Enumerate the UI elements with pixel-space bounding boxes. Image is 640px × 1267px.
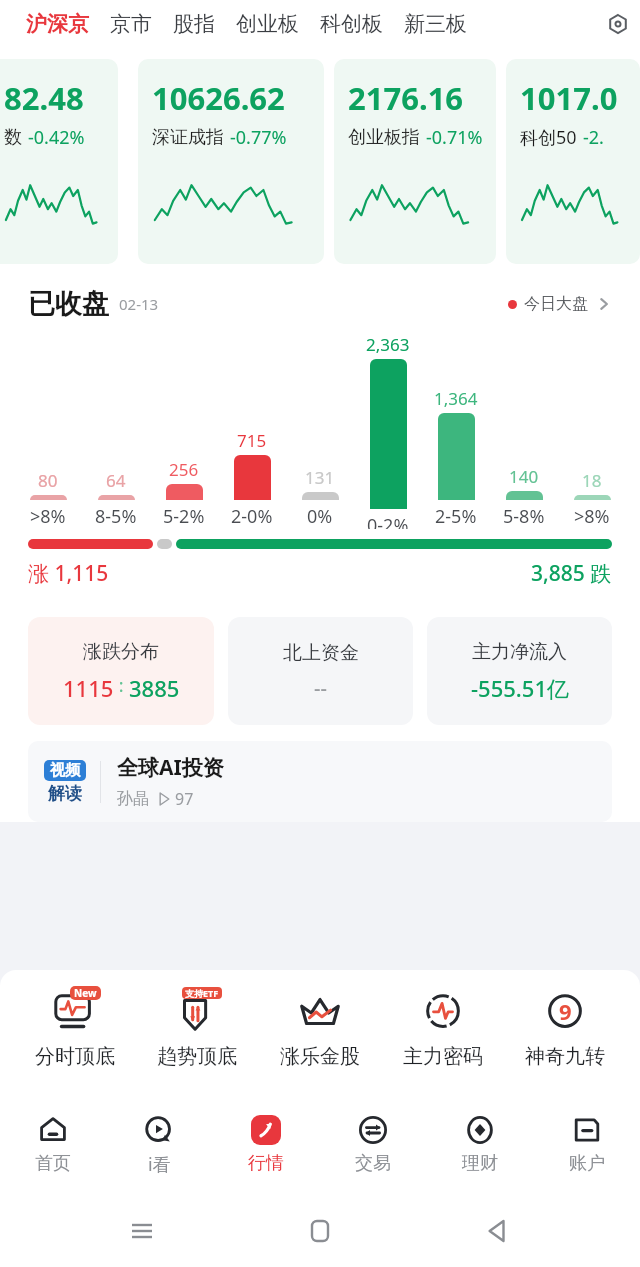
staticText: 97 [175,788,194,810]
staticText: >8% [574,504,610,529]
staticText: 首页 [35,1152,71,1175]
button[interactable]: 1017.0 [506,59,640,264]
button[interactable]: 支持ETF [141,988,253,1069]
button[interactable]: 82.48 [0,59,118,264]
staticText: 2-0% [231,504,273,529]
button[interactable]: New [19,988,131,1069]
staticText: 神奇九转 [525,1044,605,1069]
staticText: 创业板指 [348,126,420,149]
button[interactable]: 交易 [319,1105,426,1175]
staticText: 2,363 [366,333,410,356]
button[interactable]: Home [295,1206,345,1256]
staticText: 3,885 跌 [531,559,612,588]
button[interactable]: 账户 [533,1105,640,1175]
staticText: 账户 [569,1152,605,1175]
button[interactable]: 创业板 [236,5,299,43]
staticText: 9 [559,996,572,1026]
staticText: 10626.62 [152,77,285,119]
staticText: 1017.0 [520,77,618,119]
staticText: 新三板 [404,11,467,37]
button[interactable]: 北上资金 [228,617,413,725]
staticText: -2. [583,125,604,150]
staticText: 支持ETF [185,987,219,999]
staticText: 主力净流入 [472,640,567,664]
staticText: 理财 [462,1152,498,1175]
staticText: i看 [148,1152,171,1177]
staticText: 涨乐金股 [280,1044,360,1069]
button[interactable]: Scan [596,2,640,46]
staticText: -- [314,674,327,701]
staticText: -0.77% [230,125,287,150]
button[interactable]: 股指 [173,5,215,43]
button[interactable]: 首页 [0,1105,106,1175]
staticText: 视频 [50,761,80,780]
staticText: 京市 [110,11,152,37]
button[interactable]: 2176.16 [334,59,496,264]
staticText: 沪深京 [26,11,89,37]
staticText: 0-2% [367,513,409,529]
staticText: 82.48 [4,77,84,119]
button[interactable]: 9 [509,988,621,1069]
button[interactable]: 行情 [212,1105,319,1175]
staticText: >8% [30,504,66,529]
button[interactable]: Back [473,1206,523,1256]
staticText: : [114,673,129,698]
staticText: 3885 [129,673,180,703]
staticText: 0% [307,504,333,529]
button[interactable]: 主力密码 [387,988,499,1069]
staticText: 分时顶底 [35,1044,115,1069]
button[interactable]: i看 [106,1105,212,1177]
button[interactable]: 10626.62 [138,59,324,264]
button[interactable]: 主力净流入 [427,617,612,725]
staticText: 解读 [48,783,82,804]
staticText: 科创板 [320,11,383,37]
staticText: 715 [237,429,267,452]
staticText: 140 [509,465,539,488]
button[interactable]: 涨跌分布 [28,617,214,725]
staticText: 北上资金 [283,641,359,665]
button[interactable]: 科创板 [320,5,383,43]
staticText: 全球AI投资 [117,753,224,782]
staticText: 涨跌分布 [83,640,159,664]
staticText: 5-2% [163,504,205,529]
button[interactable]: 沪深京 [26,5,89,43]
staticText: 孙晶 [117,789,149,809]
staticText: 主力密码 [403,1044,483,1069]
staticText: 2176.16 [348,77,464,119]
staticText: -0.42% [28,125,85,150]
staticText: 2-5% [435,504,477,529]
staticText: 数 [4,126,22,149]
staticText: 8-5% [95,504,137,529]
button[interactable]: 新三板 [404,5,467,43]
staticText: 已收盘 [28,287,109,321]
button[interactable]: 理财 [426,1105,533,1175]
staticText: 科创50 [520,125,577,150]
staticText: 18 [582,469,602,492]
staticText: 交易 [355,1152,391,1175]
staticText: 股指 [173,11,215,37]
button[interactable]: Recents [117,1206,167,1256]
staticText: 今日大盘 [524,294,588,314]
staticText: 02-13 [119,294,159,314]
staticText: -0.71% [426,125,483,150]
staticText: 创业板 [236,11,299,37]
button[interactable]: 涨乐金股 [264,988,376,1069]
staticText: 131 [305,466,335,489]
staticText: 趋势顶底 [157,1044,237,1069]
staticText: New [74,986,97,1000]
staticText: 深证成指 [152,126,224,149]
staticText: 1115 [63,673,114,703]
button[interactable]: 京市 [110,5,152,43]
staticText: -555.51亿 [471,673,569,703]
staticText: 64 [106,469,126,492]
staticText: 256 [169,458,199,481]
staticText: 1,364 [434,387,478,410]
staticText: 80 [38,469,58,492]
button[interactable]: 今日大盘 [508,294,612,314]
staticText: 5-8% [503,504,545,529]
staticText: 行情 [248,1152,284,1175]
staticText: 涨 1,115 [28,559,109,588]
button[interactable]: 视频 [28,741,612,822]
